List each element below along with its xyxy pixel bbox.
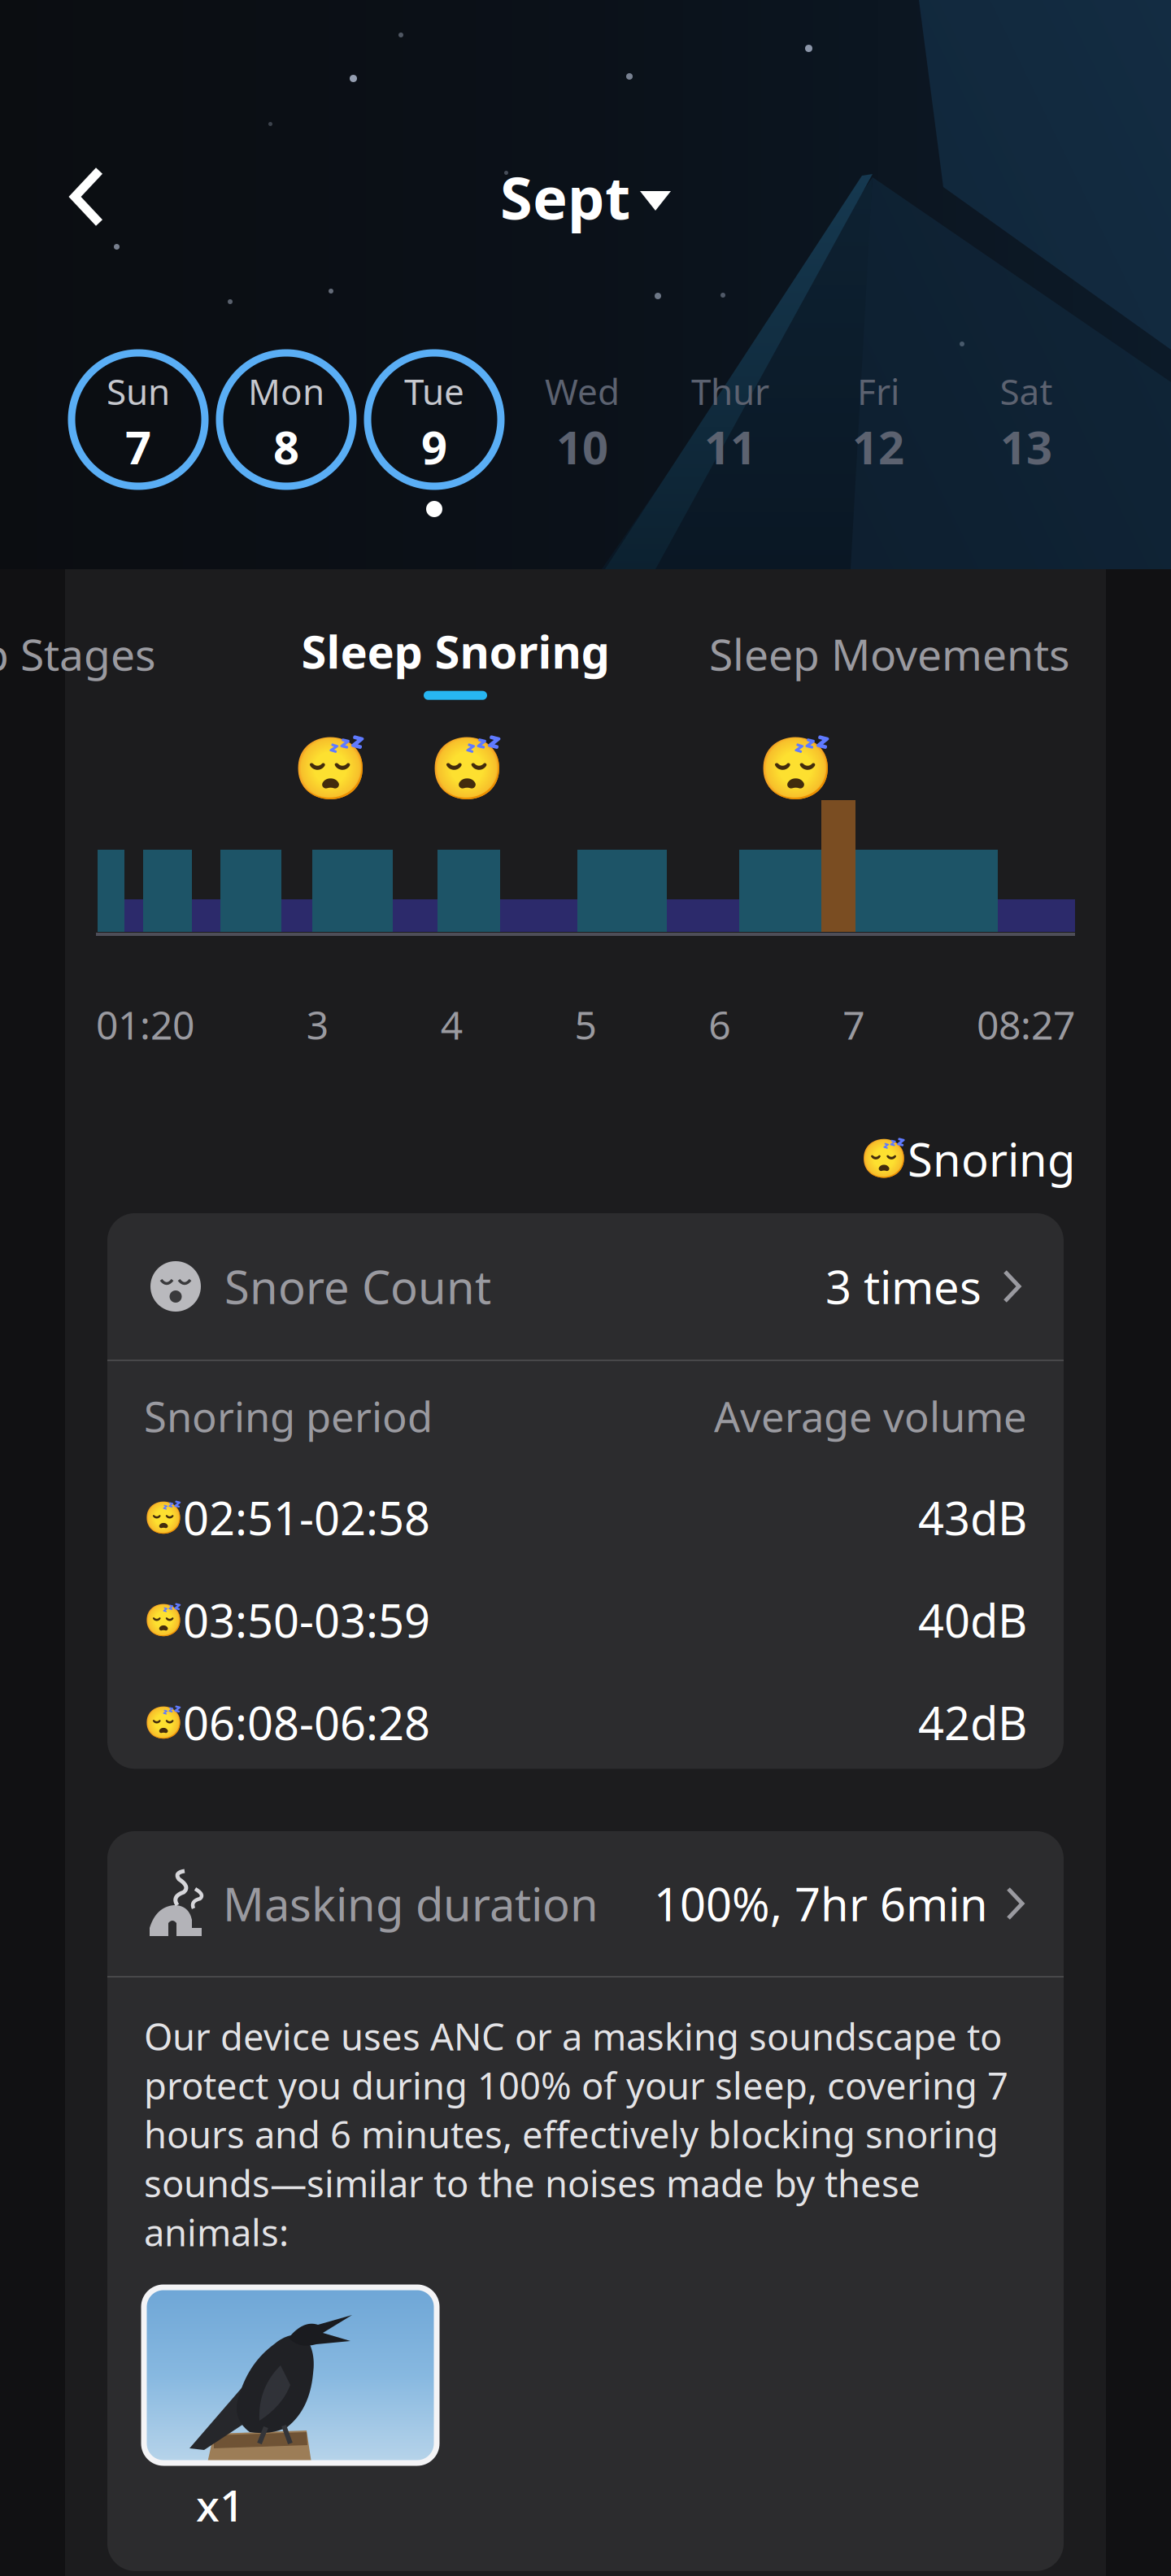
staticText: 13 (1000, 416, 1052, 477)
staticText: 3 (306, 999, 328, 1050)
staticText: Mon (248, 367, 324, 415)
staticText: Sleep Movements (709, 625, 1070, 683)
staticText: Snoring (908, 1129, 1075, 1189)
staticText: 😴 (293, 734, 368, 804)
staticText: Sleep Stages (0, 625, 156, 683)
button[interactable]: Tue (360, 348, 508, 519)
staticText: Average volume (714, 1389, 1027, 1444)
button[interactable]: Wed (508, 348, 656, 519)
staticText: 11 (704, 416, 756, 477)
button[interactable]: Sleep Stages (0, 615, 156, 693)
staticText: 😴 (758, 734, 834, 804)
staticText: 03:50-03:59 (183, 1590, 430, 1650)
button[interactable]: Sleep Snoring (293, 611, 618, 709)
button[interactable]: Snore Count (107, 1213, 1064, 1360)
staticText: 9 (421, 416, 447, 477)
staticText: Sleep Snoring (301, 621, 609, 681)
staticText: 40dB (918, 1590, 1027, 1650)
button[interactable]: Back (26, 140, 148, 254)
button[interactable]: Sleep Movements (703, 615, 1077, 693)
staticText: 10 (556, 416, 608, 477)
button[interactable]: Sat (952, 348, 1100, 519)
staticText: 02:51-02:58 (183, 1487, 430, 1548)
staticText: 7 (125, 416, 151, 477)
staticText: Masking duration (223, 1873, 599, 1934)
staticText: Tue (404, 367, 464, 415)
staticText: 😴 (429, 734, 505, 804)
staticText: 12 (852, 416, 904, 477)
staticText: 😴 (144, 1500, 183, 1536)
staticText: Thur (691, 367, 769, 415)
staticText: Snoring period (144, 1389, 433, 1444)
staticText: 08:27 (977, 999, 1075, 1050)
button[interactable]: Masking duration (107, 1831, 1064, 1976)
button[interactable]: Sun (64, 348, 212, 519)
staticText: Sat (1000, 367, 1053, 415)
staticText: 4 (441, 999, 462, 1050)
staticText: 😴 (144, 1704, 183, 1740)
staticText: 43dB (918, 1487, 1027, 1548)
button[interactable]: Sept (479, 148, 692, 246)
button[interactable]: Mon (212, 348, 360, 519)
staticText: 100%, 7hr 6min (654, 1873, 988, 1934)
staticText: 42dB (918, 1692, 1027, 1753)
button[interactable]: Fri (804, 348, 952, 519)
staticText: 5 (575, 999, 596, 1050)
staticText: 8 (273, 416, 299, 477)
staticText: 7 (843, 999, 865, 1050)
staticText: Wed (545, 367, 620, 415)
staticText: Sun (107, 367, 170, 415)
staticText: Snore Count (224, 1256, 491, 1317)
staticText: Sept (500, 158, 630, 236)
staticText: x1 (196, 2476, 245, 2534)
staticText: 06:08-06:28 (183, 1692, 430, 1753)
staticText: 01:20 (96, 999, 194, 1050)
staticText: Fri (857, 367, 899, 415)
staticText: 😴 (860, 1137, 908, 1181)
button[interactable]: Thur (656, 348, 804, 519)
staticText: 6 (709, 999, 730, 1050)
staticText: Our device uses ANC or a masking soundsc… (144, 2012, 1008, 2256)
staticText: 😴 (144, 1602, 183, 1638)
staticText: 3 times (825, 1256, 982, 1317)
